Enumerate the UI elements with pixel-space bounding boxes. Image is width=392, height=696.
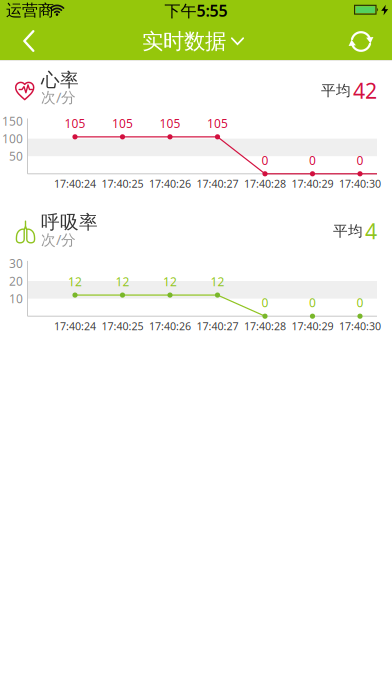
- staticText: 呼吸率: [41, 211, 98, 234]
- staticText: 105: [112, 115, 133, 131]
- staticText: 0: [309, 152, 316, 168]
- staticText: 0: [356, 152, 363, 168]
- staticText: 17:40:27: [196, 319, 238, 333]
- staticText: 150: [2, 113, 23, 129]
- staticText: 10: [9, 291, 23, 306]
- staticText: 0: [261, 152, 268, 168]
- staticText: 下午5:55: [164, 0, 227, 21]
- staticText: 0: [261, 295, 268, 311]
- staticText: 17:40:30: [339, 319, 381, 333]
- staticText: 50: [9, 148, 23, 164]
- staticText: 17:40:25: [101, 319, 143, 333]
- staticText: 17:40:24: [54, 319, 96, 333]
- staticText: 17:40:26: [149, 176, 191, 191]
- staticText: 17:40:25: [101, 176, 143, 191]
- staticText: 4: [365, 217, 377, 245]
- staticText: 平均: [321, 81, 351, 99]
- staticText: 17:40:29: [291, 319, 333, 333]
- staticText: 实时数据: [142, 28, 226, 55]
- staticText: 0: [356, 295, 363, 311]
- staticText: 17:40:24: [54, 176, 96, 191]
- staticText: 12: [163, 274, 177, 289]
- staticText: 105: [207, 115, 228, 131]
- staticText: 0: [309, 295, 316, 311]
- staticText: 42: [353, 76, 377, 105]
- button[interactable]: 实时数据: [142, 28, 244, 55]
- staticText: 12: [68, 274, 82, 289]
- staticText: 17:40:26: [149, 319, 191, 333]
- staticText: 12: [210, 274, 224, 289]
- staticText: 105: [64, 115, 85, 131]
- staticText: 17:40:27: [196, 176, 238, 191]
- staticText: 17:40:28: [244, 176, 286, 191]
- button[interactable]: Back: [0, 24, 44, 58]
- staticText: 30: [9, 255, 23, 271]
- staticText: 17:40:29: [291, 176, 333, 191]
- button[interactable]: Refresh: [339, 24, 383, 58]
- staticText: 次/分: [41, 230, 76, 249]
- staticText: 心率: [41, 68, 79, 91]
- staticText: 17:40:30: [339, 176, 381, 191]
- staticText: 20: [9, 273, 23, 289]
- staticText: 平均: [333, 222, 363, 240]
- staticText: 次/分: [41, 87, 76, 107]
- staticText: 105: [159, 115, 180, 131]
- staticText: 12: [115, 274, 129, 289]
- staticText: 运营商: [6, 1, 54, 20]
- staticText: 17:40:28: [244, 319, 286, 333]
- staticText: 100: [2, 131, 23, 146]
